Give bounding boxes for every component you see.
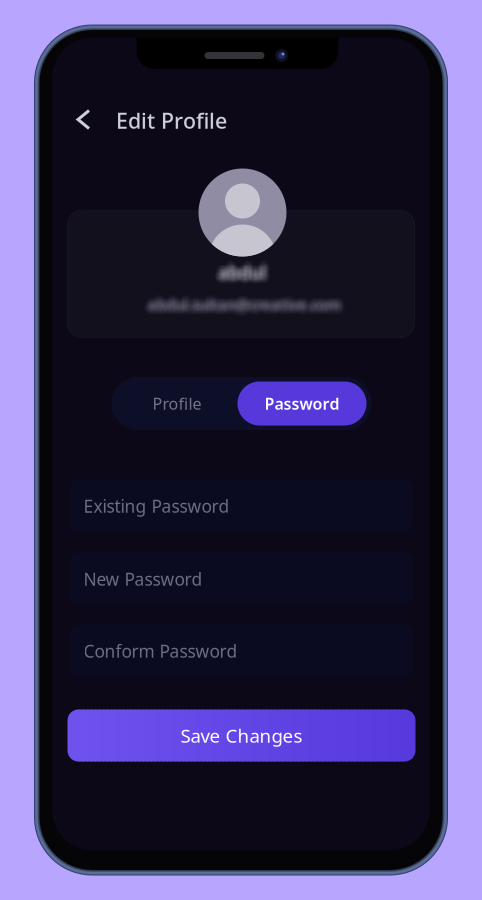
- staticText: abdul: [219, 258, 267, 281]
- staticText: abdul.sultan@creative.com: [148, 299, 341, 319]
- staticText: abdul: [216, 261, 264, 284]
- staticText: abdul.sultan@creative.com: [143, 296, 336, 315]
- staticText: abdul.sultan@creative.com: [150, 297, 343, 316]
- staticText: abdul.sultan@creative.com: [145, 296, 338, 315]
- staticText: abdul.sultan@creative.com: [148, 294, 341, 314]
- staticText: abdul.sultan@creative.com: [150, 293, 343, 313]
- staticText: abdul: [218, 262, 266, 285]
- staticText: abdul.sultan@creative.com: [150, 299, 343, 319]
- staticText: abdul: [217, 263, 265, 286]
- staticText: abdul: [214, 264, 262, 287]
- staticText: abdul: [222, 261, 270, 284]
- staticText: abdul.sultan@creative.com: [144, 296, 337, 315]
- staticText: abdul.sultan@creative.com: [149, 292, 342, 311]
- staticText: abdul: [218, 264, 266, 287]
- staticText: abdul: [218, 259, 266, 282]
- staticText: abdul: [217, 264, 265, 287]
- staticText: abdul.sultan@creative.com: [150, 291, 343, 310]
- staticText: abdul.sultan@creative.com: [146, 292, 339, 311]
- staticText: Password: [264, 393, 339, 414]
- staticText: abdul: [217, 259, 265, 282]
- staticText: abdul.sultan@creative.com: [151, 298, 344, 318]
- staticText: abdul: [218, 256, 266, 279]
- staticText: abdul: [218, 261, 266, 284]
- staticText: abdul: [223, 259, 271, 282]
- staticText: abdul: [219, 256, 267, 279]
- staticText: abdul: [217, 261, 265, 284]
- staticText: abdul.sultan@creative.com: [151, 293, 344, 313]
- staticText: abdul.sultan@creative.com: [153, 294, 346, 314]
- staticText: abdul.sultan@creative.com: [149, 299, 342, 319]
- staticText: abdul.sultan@creative.com: [153, 292, 346, 311]
- staticText: abdul: [219, 262, 267, 285]
- staticText: abdul: [223, 258, 271, 281]
- staticText: abdul.sultan@creative.com: [148, 298, 341, 318]
- button[interactable]: Save Changes: [67, 709, 415, 761]
- staticText: abdul: [222, 258, 270, 281]
- staticText: New Password: [83, 567, 202, 590]
- staticText: abdul.sultan@creative.com: [146, 294, 339, 314]
- staticText: abdul: [222, 257, 270, 280]
- staticText: abdul.sultan@creative.com: [150, 298, 343, 318]
- staticText: abdul.sultan@creative.com: [148, 292, 341, 311]
- staticText: abdul.sultan@creative.com: [146, 291, 339, 310]
- button[interactable]: Conform Password: [69, 624, 413, 677]
- staticText: abdul.sultan@creative.com: [151, 294, 344, 314]
- staticText: abdul: [216, 258, 264, 281]
- staticText: abdul.sultan@creative.com: [149, 291, 342, 310]
- staticText: abdul.sultan@creative.com: [145, 299, 338, 319]
- staticText: abdul.sultan@creative.com: [149, 294, 342, 314]
- staticText: abdul: [216, 257, 264, 280]
- staticText: abdul.sultan@creative.com: [144, 294, 337, 314]
- staticText: abdul: [219, 259, 267, 282]
- staticText: abdul.sultan@creative.com: [148, 289, 341, 309]
- staticText: abdul: [222, 262, 270, 285]
- staticText: abdul: [217, 262, 265, 285]
- staticText: abdul.sultan@creative.com: [149, 296, 342, 315]
- button[interactable]: Password: [237, 381, 366, 425]
- staticText: abdul: [217, 266, 265, 289]
- staticText: abdul: [218, 263, 266, 286]
- staticText: abdul: [222, 263, 270, 286]
- staticText: abdul.sultan@creative.com: [149, 289, 342, 309]
- staticText: abdul.sultan@creative.com: [150, 292, 343, 311]
- staticText: abdul: [216, 262, 264, 285]
- staticText: abdul: [216, 266, 264, 289]
- staticText: abdul.sultan@creative.com: [150, 294, 343, 314]
- staticText: abdul: [219, 264, 267, 287]
- staticText: abdul: [221, 259, 269, 282]
- staticText: abdul: [221, 258, 269, 281]
- staticText: abdul: [219, 261, 267, 284]
- staticText: abdul: [217, 257, 265, 280]
- staticText: abdul.sultan@creative.com: [151, 297, 344, 316]
- staticText: abdul: [213, 262, 261, 285]
- staticText: abdul: [214, 263, 262, 286]
- staticText: abdul: [219, 263, 267, 286]
- staticText: abdul: [214, 262, 262, 285]
- staticText: abdul.sultan@creative.com: [143, 294, 336, 314]
- staticText: abdul.sultan@creative.com: [146, 296, 339, 315]
- staticText: Edit Profile: [116, 106, 227, 135]
- staticText: abdul.sultan@creative.com: [148, 293, 341, 313]
- staticText: abdul: [216, 264, 264, 287]
- staticText: abdul.sultan@creative.com: [145, 292, 338, 311]
- button[interactable]: Existing Password: [69, 479, 413, 532]
- staticText: abdul.sultan@creative.com: [153, 297, 346, 316]
- button[interactable]: Back: [64, 100, 102, 138]
- staticText: abdul.sultan@creative.com: [148, 296, 341, 315]
- staticText: abdul.sultan@creative.com: [146, 299, 339, 319]
- staticText: abdul: [216, 259, 264, 282]
- staticText: abdul: [217, 258, 265, 281]
- staticText: abdul: [214, 259, 262, 282]
- staticText: abdul.sultan@creative.com: [149, 293, 342, 313]
- staticText: abdul: [221, 262, 269, 285]
- staticText: abdul: [213, 261, 261, 284]
- staticText: abdul: [218, 257, 266, 280]
- staticText: abdul: [221, 257, 269, 280]
- button[interactable]: New Password: [69, 552, 413, 605]
- button[interactable]: Profile: [116, 381, 237, 425]
- staticText: abdul: [219, 266, 267, 289]
- staticText: abdul: [223, 263, 271, 286]
- staticText: abdul: [219, 257, 267, 280]
- staticText: abdul.sultan@creative.com: [144, 293, 337, 313]
